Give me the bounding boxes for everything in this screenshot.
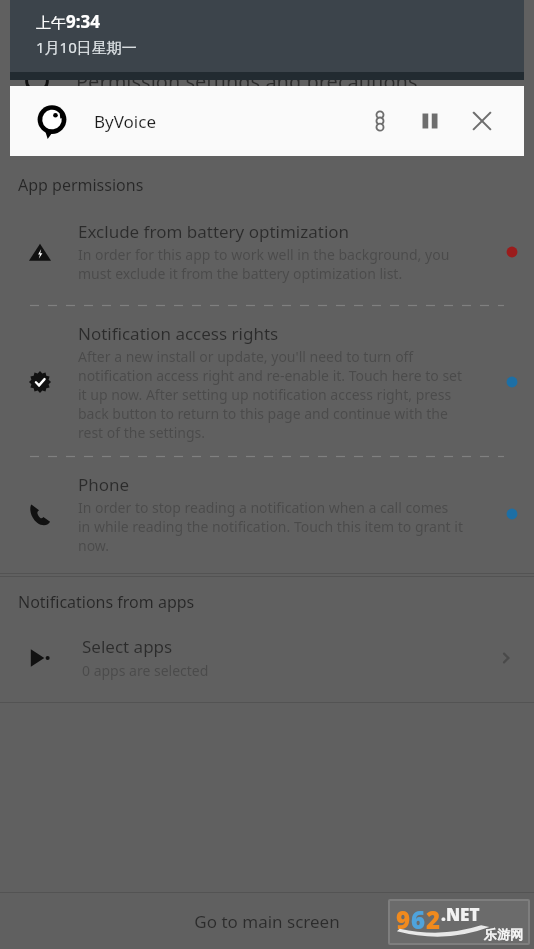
staticText: Notification access rights — [78, 322, 279, 345]
staticText: 9 — [396, 903, 411, 936]
staticText: Permission settings and precautions — [76, 68, 418, 95]
staticText: 9:34 — [66, 10, 100, 33]
staticText: ByVoice — [94, 110, 156, 133]
staticText: Go to main screen — [194, 910, 340, 933]
button[interactable]: Select apps — [0, 613, 534, 702]
staticText: 1月10日星期一 — [36, 37, 137, 57]
staticText: .NET — [441, 903, 480, 926]
staticText: App permissions — [18, 174, 144, 196]
staticText: 上午 — [36, 14, 66, 33]
staticText: After a new install or update, you'll ne… — [78, 347, 463, 442]
staticText: Exclude from battery optimization — [78, 220, 350, 243]
button[interactable]: Pause — [404, 95, 456, 147]
button[interactable]: Exclude from battery optimization — [0, 196, 534, 305]
staticText: In order to stop reading a notification … — [78, 498, 463, 555]
button[interactable]: Close — [456, 95, 508, 147]
staticText: 乐游网 — [484, 926, 523, 942]
staticText: Notifications from apps — [18, 591, 195, 613]
button[interactable]: Go to main screen — [0, 893, 534, 949]
staticText: 6 — [411, 903, 426, 936]
staticText: In order for this app to work well in th… — [78, 245, 450, 283]
staticText: Phone — [78, 473, 130, 496]
staticText: 0 apps are selected — [82, 661, 209, 680]
button[interactable]: Phone — [0, 457, 534, 573]
button[interactable]: Notification access rights — [0, 306, 534, 456]
button[interactable]: More options — [356, 97, 404, 145]
staticText: 2 — [426, 903, 441, 936]
staticText: Select apps — [82, 635, 173, 658]
